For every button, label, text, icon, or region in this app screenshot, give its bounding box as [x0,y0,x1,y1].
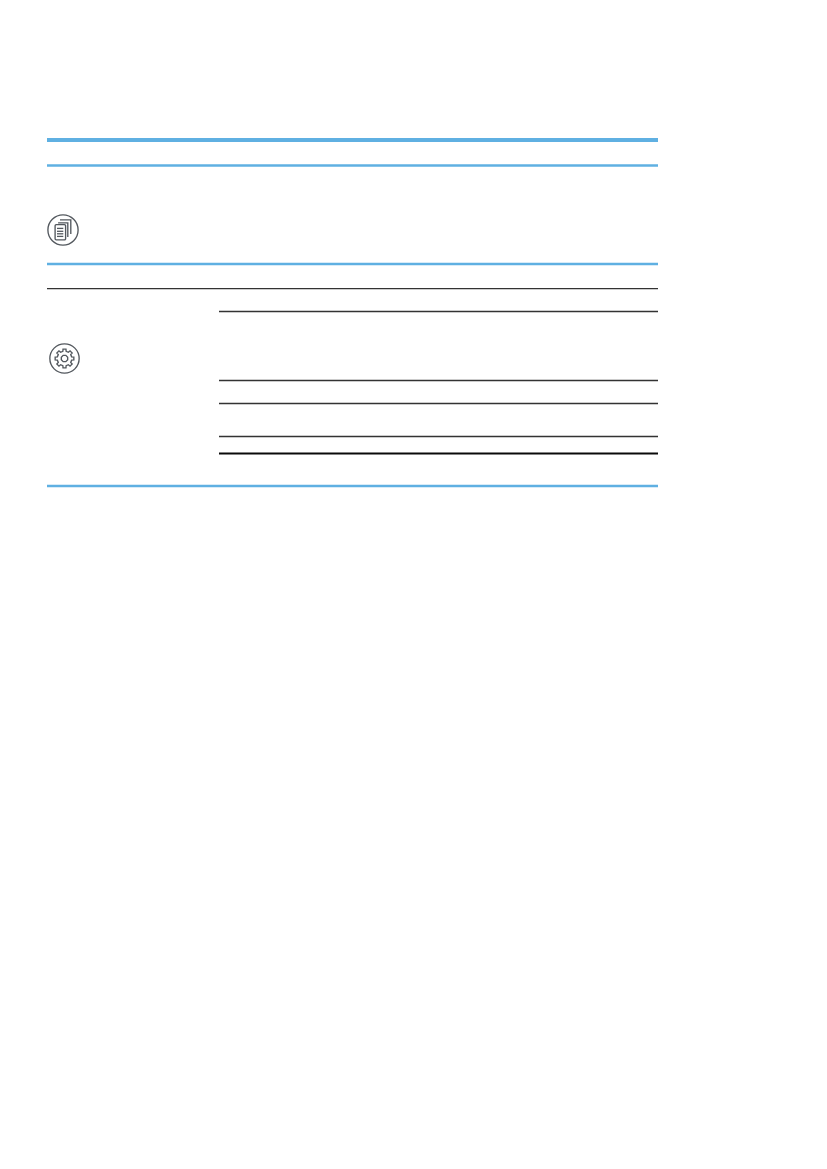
button[interactable]: Copy documents [47,214,79,246]
button[interactable]: Settings [49,343,80,374]
